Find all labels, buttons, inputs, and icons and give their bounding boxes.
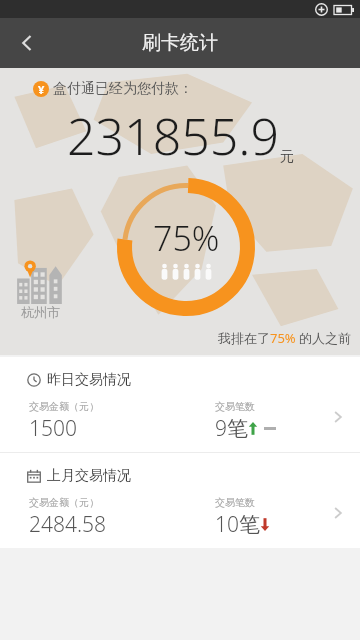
staticText: 交易金额（元） xyxy=(29,400,99,413)
staticText: 上月交易情况 xyxy=(47,467,131,485)
staticText: 231855.9 xyxy=(67,102,280,170)
staticText: 交易金额（元） xyxy=(29,496,99,509)
staticText: 2484.58 xyxy=(29,510,107,539)
staticText: 10笔 xyxy=(215,510,260,539)
other: 查看详情 xyxy=(316,491,360,535)
staticText: 元 xyxy=(280,148,294,166)
other: 查看详情 xyxy=(316,395,360,439)
staticText: 9笔 xyxy=(215,414,248,443)
staticText: 昨日交易情况 xyxy=(47,371,131,389)
button[interactable]: 上月交易情况 xyxy=(0,453,360,548)
staticText: 交易笔数 xyxy=(215,400,255,413)
staticText: 1500 xyxy=(29,414,77,443)
staticText: 刷卡统计 xyxy=(142,31,218,55)
staticText: 盒付通已经为您付款： xyxy=(53,80,193,98)
staticText: 交易笔数 xyxy=(215,496,255,509)
staticText: 我排在了75% 的人之前 xyxy=(218,329,352,347)
staticText: 75% xyxy=(153,215,220,261)
button[interactable]: 昨日交易情况 xyxy=(0,357,360,452)
staticText: ¥ xyxy=(38,82,45,97)
button[interactable]: Back xyxy=(0,18,54,68)
staticText: 杭州市 xyxy=(21,304,60,320)
